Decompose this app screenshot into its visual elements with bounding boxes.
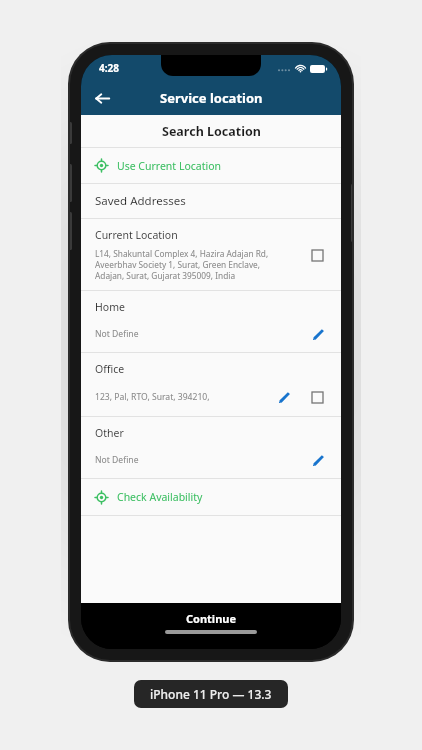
staticText: Not Define [95, 328, 309, 340]
button[interactable]: Check Availability [81, 479, 341, 515]
button[interactable]: Edit Office address [275, 388, 293, 406]
staticText: Not Define [95, 454, 309, 466]
button[interactable]: Other [81, 417, 341, 478]
staticText: Current Location [95, 228, 178, 242]
button[interactable]: Continue [186, 611, 237, 626]
staticText: Search Location [162, 123, 261, 140]
staticText: Office [95, 362, 125, 376]
staticText: Home [95, 300, 125, 314]
button[interactable]: Home [81, 291, 341, 352]
button[interactable]: Office [81, 353, 341, 416]
staticText: L14, Shakuntal Complex 4, Hazira Adajan … [95, 248, 282, 281]
staticText: 4:28 [99, 61, 119, 75]
button[interactable]: Search Location [81, 115, 341, 147]
button[interactable]: Back [87, 83, 117, 113]
staticText: Continue [186, 611, 237, 626]
staticText: Other [95, 426, 124, 440]
staticText: iPhone 11 Pro — 13.3 [150, 686, 272, 702]
staticText: Service location [160, 89, 263, 107]
button[interactable]: Select address [307, 387, 327, 407]
button[interactable]: Current Location [81, 219, 341, 290]
button[interactable]: Use Current Location [81, 148, 341, 183]
button[interactable]: Edit Other address [309, 451, 327, 469]
staticText: Saved Addresses [95, 193, 186, 209]
button[interactable]: Select address [307, 245, 327, 265]
staticText: 123, Pal, RTO, Surat, 394210, [95, 391, 275, 403]
button[interactable]: Edit Home address [309, 325, 327, 343]
staticText: Check Availability [117, 490, 203, 504]
staticText: Use Current Location [117, 159, 222, 173]
